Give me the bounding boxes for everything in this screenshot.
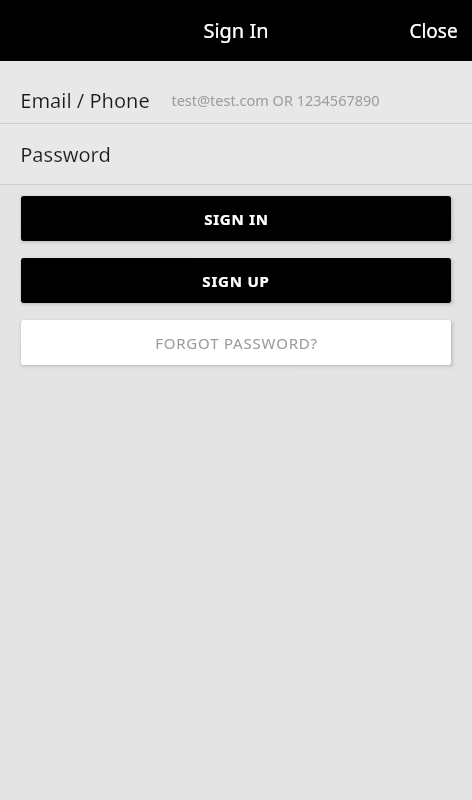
staticText: FORGOT PASSWORD? xyxy=(155,333,318,353)
staticText: Email / Phone xyxy=(20,87,150,114)
staticText: SIGN IN xyxy=(204,209,269,229)
staticText: Password xyxy=(20,141,111,168)
staticText: test@test.com OR 1234567890 xyxy=(171,90,380,110)
button[interactable]: Close xyxy=(395,0,472,61)
button[interactable]: SIGN IN xyxy=(21,196,451,241)
staticText: SIGN UP xyxy=(202,271,270,291)
staticText: Close xyxy=(409,18,458,44)
button[interactable]: Password xyxy=(0,124,472,184)
staticText: Sign In xyxy=(203,17,269,44)
button[interactable]: FORGOT PASSWORD? xyxy=(21,320,451,365)
button[interactable]: SIGN UP xyxy=(21,258,451,303)
button[interactable]: Email / Phone xyxy=(0,77,472,123)
